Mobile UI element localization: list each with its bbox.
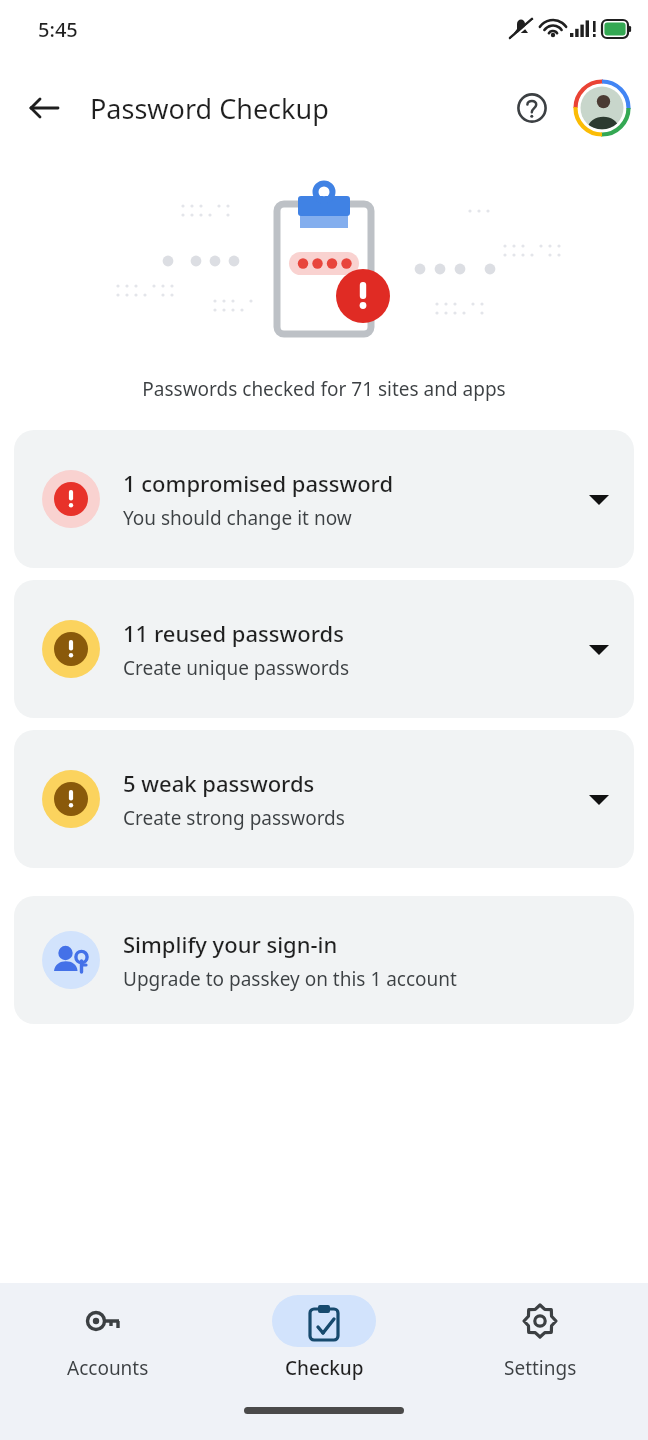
- button[interactable]: Settings: [432, 1283, 648, 1393]
- staticText: 11 reused passwords: [123, 618, 344, 648]
- staticText: Simplify your sign-in: [123, 929, 338, 959]
- button[interactable]: 11 reused passwords: [14, 580, 634, 718]
- button[interactable]: Accounts: [0, 1283, 216, 1393]
- staticText: Create unique passwords: [123, 655, 350, 681]
- staticText: Create strong passwords: [123, 805, 345, 831]
- button[interactable]: Help: [506, 82, 558, 134]
- button[interactable]: 5 weak passwords: [14, 730, 634, 868]
- staticText: Settings: [504, 1355, 577, 1381]
- staticText: 1 compromised password: [123, 468, 394, 498]
- button[interactable]: Account profile: [572, 78, 632, 138]
- staticText: You should change it now: [123, 505, 352, 531]
- button[interactable]: 1 compromised password: [14, 430, 634, 568]
- staticText: Passwords checked for 71 sites and apps: [0, 376, 648, 402]
- staticText: Accounts: [67, 1355, 149, 1381]
- staticText: Password Checkup: [90, 90, 329, 127]
- staticText: Upgrade to passkey on this 1 account: [123, 966, 457, 992]
- staticText: 5:45: [38, 16, 78, 43]
- staticText: 5 weak passwords: [123, 768, 315, 798]
- button[interactable]: Checkup: [216, 1283, 432, 1393]
- staticText: Checkup: [285, 1355, 364, 1381]
- button[interactable]: Back: [16, 80, 72, 136]
- button[interactable]: Simplify your sign-in: [14, 896, 634, 1024]
